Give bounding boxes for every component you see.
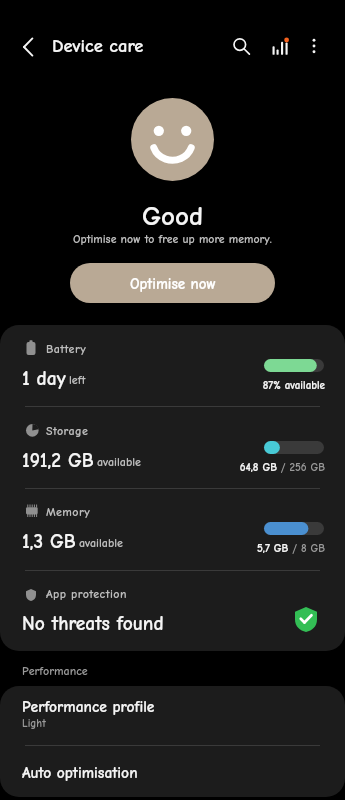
button[interactable]: Optimise now: [70, 263, 275, 303]
button[interactable]: Performance profile: [0, 686, 345, 745]
staticText: Light: [22, 717, 46, 730]
button[interactable]: Back: [10, 29, 46, 65]
staticText: 191,2 GB: [22, 449, 94, 471]
staticText: Optimise now: [130, 275, 216, 292]
staticText: 1 day: [22, 367, 66, 389]
staticText: Battery: [46, 342, 87, 356]
button[interactable]: Search: [224, 29, 260, 65]
staticText: Performance profile: [22, 698, 155, 716]
button[interactable]: Storage: [0, 407, 345, 488]
button[interactable]: More options: [296, 28, 332, 64]
staticText: available: [79, 536, 123, 550]
staticText: 87% available: [188, 379, 325, 392]
button[interactable]: Usage statistics: [263, 30, 297, 60]
button[interactable]: App protection: [0, 570, 345, 651]
staticText: Optimise now to free up more memory.: [73, 232, 272, 246]
staticText: Device care: [52, 35, 144, 56]
staticText: Storage: [46, 424, 89, 438]
staticText: Performance: [22, 664, 88, 678]
staticText: No threats found: [22, 612, 164, 634]
staticText: App protection: [46, 587, 127, 601]
staticText: available: [97, 455, 141, 469]
staticText: Good: [142, 201, 204, 232]
staticText: 5,7 GB / 8 GB: [188, 542, 325, 555]
button[interactable]: Memory: [0, 488, 345, 569]
button[interactable]: Auto optimisation: [0, 746, 345, 797]
staticText: 1,3 GB: [22, 530, 76, 552]
staticText: 64,8 GB / 256 GB: [188, 461, 325, 474]
staticText: left: [69, 373, 86, 387]
staticText: Memory: [46, 505, 91, 519]
button[interactable]: Battery: [0, 325, 345, 406]
staticText: Auto optimisation: [22, 764, 138, 782]
